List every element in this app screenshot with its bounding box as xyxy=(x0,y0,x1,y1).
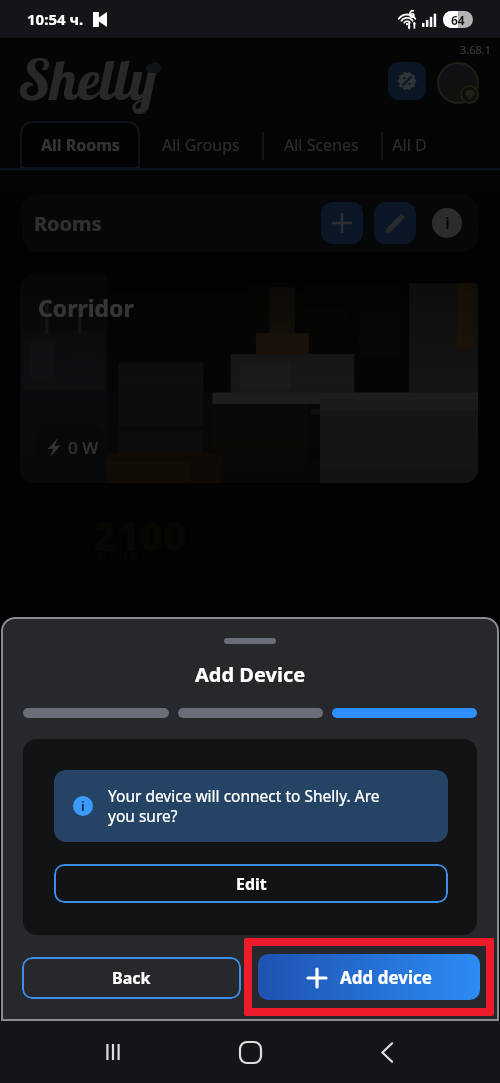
button[interactable]: All D xyxy=(384,121,500,169)
staticText: Edit xyxy=(236,873,267,895)
staticText: Add device xyxy=(340,966,432,989)
button[interactable]: Back xyxy=(361,1026,413,1078)
button[interactable]: Add room xyxy=(321,202,363,244)
staticText: 3.68.1 xyxy=(460,42,492,57)
staticText: All D xyxy=(384,134,427,156)
button[interactable]: All Scenes xyxy=(265,121,377,169)
button[interactable]: Promotions xyxy=(388,62,426,100)
staticText: 0 W xyxy=(68,436,99,459)
staticText: 10:54 ч. xyxy=(27,9,84,29)
staticText: 64 xyxy=(451,12,465,28)
staticText: Your device will connect to Shelly. Are … xyxy=(108,785,428,827)
button[interactable]: Edit xyxy=(54,864,448,903)
staticText: Shelly xyxy=(20,44,157,114)
staticText: All Groups xyxy=(162,134,240,156)
button[interactable]: Home xyxy=(224,1026,276,1078)
button[interactable]: All Rooms xyxy=(20,121,140,169)
staticText: Back xyxy=(112,967,151,989)
staticText: i xyxy=(445,212,450,234)
staticText: Rooms xyxy=(34,210,102,237)
staticText: Add Device xyxy=(195,661,306,688)
button[interactable]: Recents xyxy=(87,1026,139,1078)
staticText: All Scenes xyxy=(284,134,359,156)
button[interactable]: Add device xyxy=(258,954,480,1000)
button[interactable]: Back xyxy=(22,957,241,999)
staticText: 6 xyxy=(409,7,415,21)
button[interactable]: Profile xyxy=(437,62,479,104)
button[interactable]: Edit rooms xyxy=(374,202,416,244)
staticText: i xyxy=(81,797,85,815)
button[interactable]: Info xyxy=(432,208,462,238)
staticText: Corridor xyxy=(38,292,134,323)
button[interactable]: All Groups xyxy=(144,121,258,169)
staticText: All Rooms xyxy=(41,134,120,156)
button[interactable]: Corridor xyxy=(20,275,478,483)
